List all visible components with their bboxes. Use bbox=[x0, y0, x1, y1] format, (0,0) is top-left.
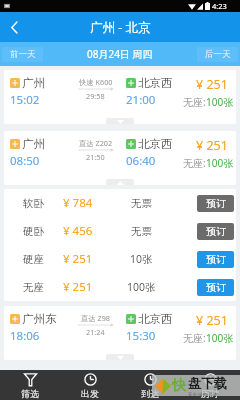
staticText: 历时 bbox=[201, 388, 219, 399]
staticText: 预订 bbox=[206, 281, 226, 294]
staticText: 100张 bbox=[206, 156, 234, 170]
staticText: 18:06 bbox=[10, 328, 40, 344]
staticText: 广州东 bbox=[22, 312, 57, 326]
staticText: ¥ 251 bbox=[196, 76, 228, 93]
staticText: 100张 bbox=[206, 331, 234, 345]
staticText: 100张 bbox=[206, 95, 234, 109]
staticText: 29:58 bbox=[86, 91, 105, 101]
staticText: 15:30 bbox=[126, 328, 156, 344]
staticText: 广州 bbox=[22, 76, 45, 90]
staticText: 21:00 bbox=[126, 92, 156, 108]
staticText: 软卧 bbox=[23, 197, 44, 210]
staticText: 到达 bbox=[141, 388, 159, 399]
staticText: 无座 bbox=[23, 281, 44, 294]
staticText: 10张 bbox=[130, 252, 153, 266]
button[interactable]: 预订 bbox=[197, 223, 234, 240]
button[interactable]: 广州东 bbox=[4, 306, 236, 360]
staticText: 无座: bbox=[183, 156, 206, 170]
staticText: 盘下载 bbox=[188, 375, 227, 391]
button[interactable]: 预订 bbox=[197, 251, 234, 268]
staticText: 无票 bbox=[131, 225, 152, 238]
staticText: 快 bbox=[172, 377, 186, 395]
staticText: 广州 - 北京 bbox=[90, 19, 151, 36]
staticText: 无票 bbox=[131, 197, 152, 210]
button[interactable]: 前一天 bbox=[2, 47, 43, 62]
button[interactable]: 历时 bbox=[180, 370, 240, 400]
staticText: 21:24 bbox=[86, 327, 105, 337]
staticText: 预订 bbox=[206, 225, 226, 238]
button[interactable]: Expand bbox=[106, 118, 134, 124]
staticText: 直达 Z98 bbox=[81, 313, 111, 323]
staticText: 08:50 bbox=[10, 153, 40, 169]
staticText: 08月24日 周四 bbox=[87, 47, 153, 61]
button[interactable]: 后一天 bbox=[197, 47, 238, 62]
staticText: 预订 bbox=[206, 253, 226, 266]
staticText: 北京西 bbox=[138, 137, 173, 151]
staticText: 21:50 bbox=[86, 152, 105, 162]
staticText: 预订 bbox=[206, 197, 226, 210]
button[interactable]: 广州 bbox=[4, 131, 236, 185]
staticText: 硬座 bbox=[23, 253, 44, 266]
staticText: 直达 Z202 bbox=[79, 138, 113, 148]
staticText: ¥ 251 bbox=[63, 279, 93, 295]
staticText: 硬卧 bbox=[23, 225, 44, 238]
staticText: 无座: bbox=[183, 95, 206, 109]
staticText: 4:23 bbox=[212, 1, 227, 11]
button[interactable]: 预订 bbox=[197, 195, 234, 212]
staticText: 安全·绿色·高速 bbox=[188, 391, 218, 396]
button[interactable]: 预订 bbox=[197, 279, 234, 296]
staticText: 06:40 bbox=[126, 153, 156, 169]
staticText: ¥ 251 bbox=[196, 312, 228, 329]
staticText: 无座: bbox=[183, 331, 206, 345]
staticText: 筛选 bbox=[21, 388, 39, 399]
staticText: 出发 bbox=[81, 388, 99, 399]
staticText: 15:02 bbox=[10, 92, 40, 108]
button[interactable]: 筛选 bbox=[0, 370, 60, 400]
button[interactable]: 广州 bbox=[4, 70, 236, 124]
staticText: 快速 K600 bbox=[79, 77, 113, 87]
staticText: 前一天 bbox=[10, 49, 36, 60]
button[interactable]: 出发 bbox=[60, 370, 120, 400]
button[interactable]: Collapse bbox=[106, 179, 134, 185]
staticText: 北京西 bbox=[138, 76, 173, 90]
staticText: ¥ 784 bbox=[63, 195, 93, 211]
button[interactable]: Expand bbox=[106, 354, 134, 360]
button[interactable]: 到达 bbox=[120, 370, 180, 400]
staticText: ¥ 251 bbox=[196, 137, 228, 154]
staticText: ¥ 251 bbox=[63, 251, 93, 267]
staticText: ¥ 456 bbox=[63, 223, 93, 239]
staticText: 北京西 bbox=[138, 312, 173, 326]
staticText: 100张 bbox=[127, 280, 156, 294]
button[interactable]: Back bbox=[0, 12, 28, 42]
staticText: 广州 bbox=[22, 137, 45, 151]
staticText: 后一天 bbox=[205, 49, 231, 60]
